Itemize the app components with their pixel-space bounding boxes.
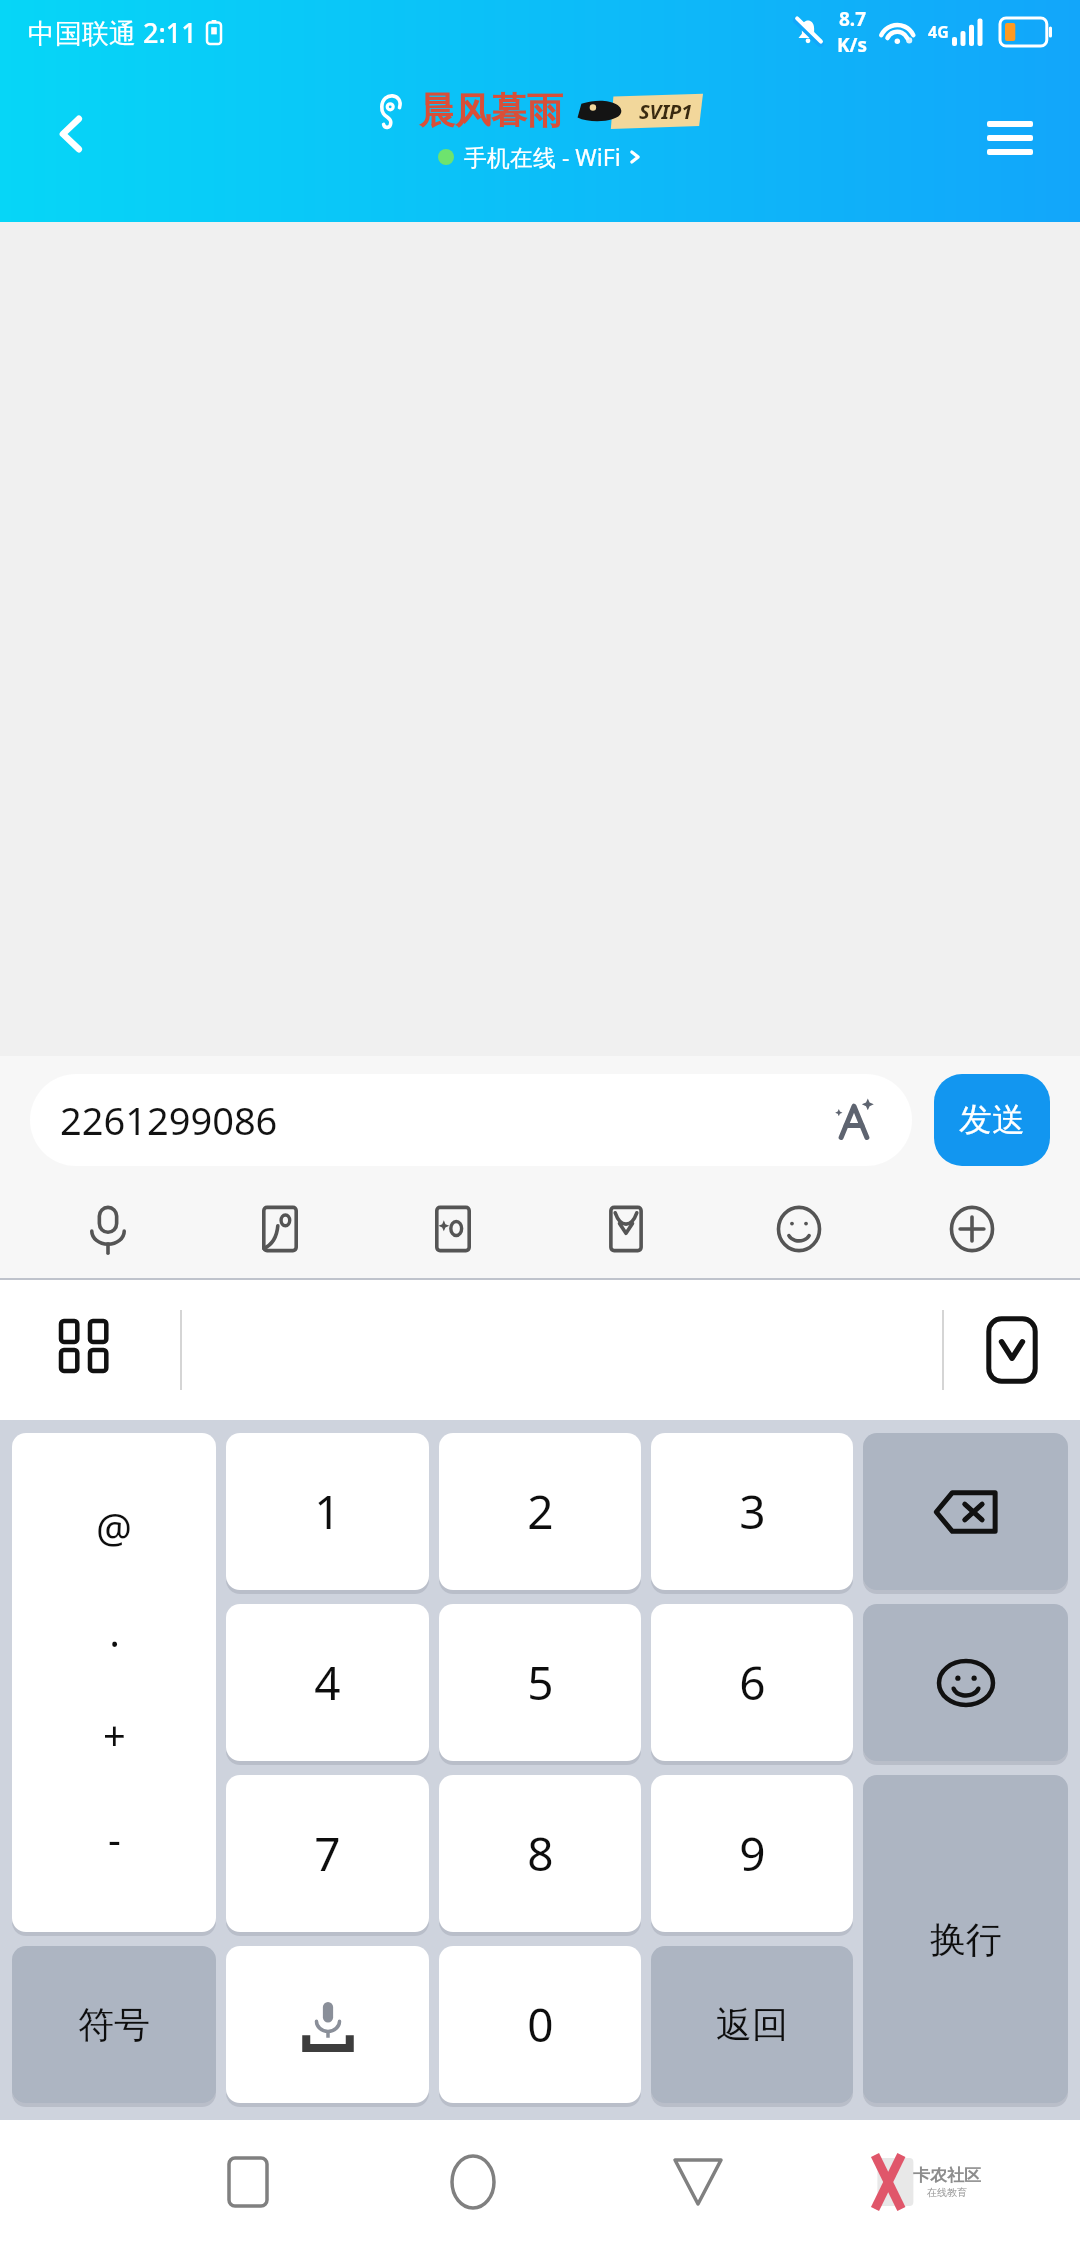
other: Emoji — [863, 1604, 1068, 1765]
staticText: 8.7 — [839, 6, 867, 32]
staticText: - — [108, 1811, 121, 1865]
button[interactable] — [863, 1604, 1068, 1761]
button[interactable]: 7 — [226, 1775, 429, 1932]
other: Backspace — [863, 1433, 1068, 1594]
button[interactable]: 手机在线 - WiFi — [438, 141, 643, 172]
staticText: 符号 — [78, 2002, 150, 2047]
button[interactable]: 发送 — [934, 1074, 1050, 1166]
staticText: 6 — [739, 1651, 766, 1714]
staticText: 4G — [928, 21, 949, 43]
button[interactable]: 2 — [439, 1433, 641, 1590]
staticText: 发送 — [959, 1099, 1025, 1141]
button[interactable]: 2261299086 — [30, 1074, 912, 1166]
button[interactable]: Keyboard layouts — [0, 1280, 180, 1420]
button[interactable]: Back — [30, 92, 114, 176]
button[interactable]: Home — [360, 2120, 585, 2244]
button[interactable]: 0 — [439, 1946, 641, 2103]
button[interactable] — [863, 1433, 1068, 1590]
button[interactable]: Red packet — [539, 1184, 712, 1274]
staticText: 8 — [527, 1822, 554, 1885]
staticText: 换行 — [930, 1917, 1002, 1962]
staticText: . — [109, 1604, 120, 1658]
staticText: 3 — [739, 1480, 766, 1543]
button[interactable]: SVIP1 — [575, 93, 703, 129]
button[interactable]: Back — [585, 2120, 810, 2244]
button[interactable]: Hide keyboard — [944, 1280, 1080, 1420]
staticText: + — [103, 1707, 126, 1761]
button[interactable]: Sticker — [366, 1184, 539, 1274]
button[interactable]: Voice — [22, 1184, 194, 1274]
button[interactable]: @ — [12, 1433, 216, 1932]
staticText: 2 — [527, 1480, 554, 1543]
button[interactable]: 返回 — [651, 1946, 853, 2103]
button[interactable]: 换行 — [863, 1775, 1068, 2103]
staticText: 7 — [314, 1822, 341, 1885]
staticText: 9 — [739, 1822, 766, 1885]
staticText: 手机在线 - WiFi — [464, 141, 621, 172]
button[interactable]: 6 — [651, 1604, 853, 1761]
staticText: 2261299086 — [60, 1094, 278, 1146]
button[interactable]: 3 — [651, 1433, 853, 1590]
button[interactable]: More — [885, 1184, 1058, 1274]
other: Voice input / space — [226, 1946, 429, 2107]
button[interactable]: 5 — [439, 1604, 641, 1761]
staticText: 4 — [314, 1651, 341, 1714]
button[interactable]: 符号 — [12, 1946, 216, 2103]
button[interactable]: Recents — [135, 2120, 360, 2244]
staticText: @ — [96, 1500, 132, 1554]
staticText: 在线教育 — [927, 2186, 967, 2199]
button[interactable]: Menu — [968, 96, 1052, 180]
staticText: 卡农社区 — [913, 2165, 981, 2186]
button[interactable]: 4 — [226, 1604, 429, 1761]
staticText: 1 — [314, 1480, 341, 1543]
staticText: 返回 — [716, 2002, 788, 2047]
staticText: 中国联通 2:11 — [28, 14, 197, 51]
staticText: K/s — [837, 32, 868, 58]
staticText: 5 — [527, 1651, 554, 1714]
staticText: SVIP1 — [639, 98, 693, 125]
button[interactable] — [226, 1946, 429, 2103]
button[interactable]: 9 — [651, 1775, 853, 1932]
button[interactable]: AI text — [826, 1092, 882, 1148]
button[interactable]: Image — [194, 1184, 366, 1274]
button[interactable]: 1 — [226, 1433, 429, 1590]
button[interactable]: 8 — [439, 1775, 641, 1932]
staticText: 0 — [527, 1993, 554, 2056]
staticText: 晨风暮雨 — [419, 88, 563, 133]
button[interactable]: Emoji — [712, 1184, 885, 1274]
